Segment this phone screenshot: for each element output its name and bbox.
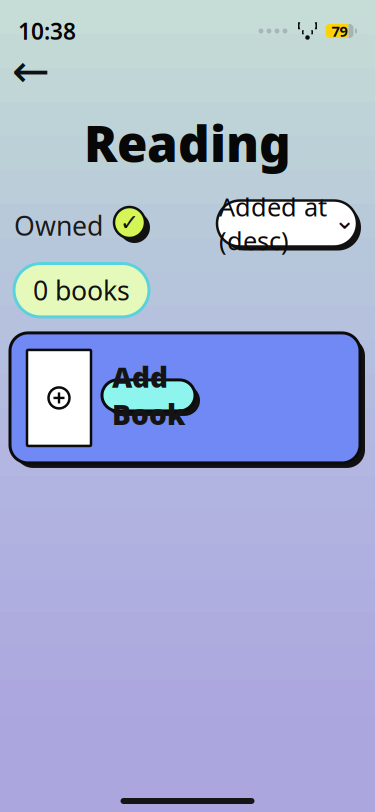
staticText: 10:38 xyxy=(18,16,76,46)
staticText: Add Book xyxy=(112,358,185,433)
staticText: ← xyxy=(12,45,50,97)
button[interactable]: Back xyxy=(8,50,54,92)
staticText: ⌄ xyxy=(334,206,355,234)
button[interactable]: Add Book xyxy=(102,380,200,416)
staticText: ✓ xyxy=(120,210,139,235)
staticText: Reading xyxy=(84,110,291,175)
staticText: Added at (desc) xyxy=(219,190,327,257)
staticText: 0 books xyxy=(33,272,130,308)
button[interactable]: Added at (desc) xyxy=(217,200,361,250)
button[interactable]: Owned xyxy=(14,207,151,244)
staticText: Owned xyxy=(14,208,103,243)
staticText: 79 xyxy=(331,21,347,41)
button[interactable]: Add book cover xyxy=(27,350,91,446)
